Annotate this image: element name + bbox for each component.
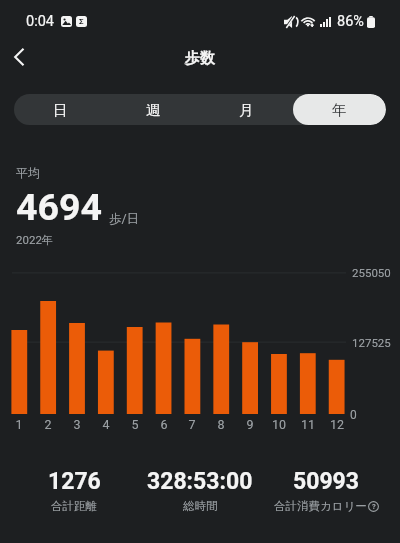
staticText: 1276 <box>48 468 101 495</box>
staticText: 328:53:00 <box>147 468 253 495</box>
staticText: 歩/日 <box>109 211 140 227</box>
staticText: 255050 <box>352 266 391 279</box>
staticText: 4 <box>94 417 118 432</box>
staticText: 50993 <box>293 468 359 495</box>
button[interactable]: 日 <box>14 94 107 125</box>
button[interactable]: 年 <box>293 94 386 125</box>
button[interactable]: 328:53:00 <box>137 468 263 513</box>
staticText: 86% <box>337 13 364 30</box>
staticText: 1 <box>7 417 31 432</box>
staticText: 年 <box>332 101 347 119</box>
staticText: 合計消費カロリー <box>274 499 367 513</box>
staticText: 歩数 <box>185 49 215 68</box>
staticText: 3 <box>65 417 89 432</box>
button[interactable]: 週 <box>107 94 200 125</box>
staticText: 合計距離 <box>51 499 97 513</box>
staticText: 127525 <box>352 336 391 349</box>
staticText: 総時間 <box>183 499 218 513</box>
button[interactable]: 50993 <box>263 468 389 513</box>
staticText: 0 <box>350 408 357 422</box>
staticText: 12 <box>325 417 349 432</box>
staticText: 5 <box>123 417 147 432</box>
staticText: ? <box>372 502 376 511</box>
staticText: 10 <box>267 417 291 432</box>
other: Help <box>368 501 379 512</box>
staticText: 11 <box>296 417 320 432</box>
staticText: 6 <box>152 417 176 432</box>
button[interactable]: 1276 <box>11 468 137 513</box>
staticText: 2 <box>36 417 60 432</box>
staticText: 7 <box>180 417 204 432</box>
button[interactable]: Back <box>2 39 38 75</box>
staticText: 平均 <box>16 165 40 180</box>
staticText: 2022年 <box>16 233 54 247</box>
staticText: 0:04 <box>26 13 54 30</box>
staticText: 週 <box>146 101 161 119</box>
staticText: Σ <box>79 17 84 26</box>
staticText: 月 <box>239 101 254 119</box>
button[interactable]: 月 <box>200 94 293 125</box>
staticText: 4694 <box>16 185 103 229</box>
staticText: 日 <box>53 101 68 119</box>
staticText: 9 <box>238 417 262 432</box>
staticText: 8 <box>209 417 233 432</box>
